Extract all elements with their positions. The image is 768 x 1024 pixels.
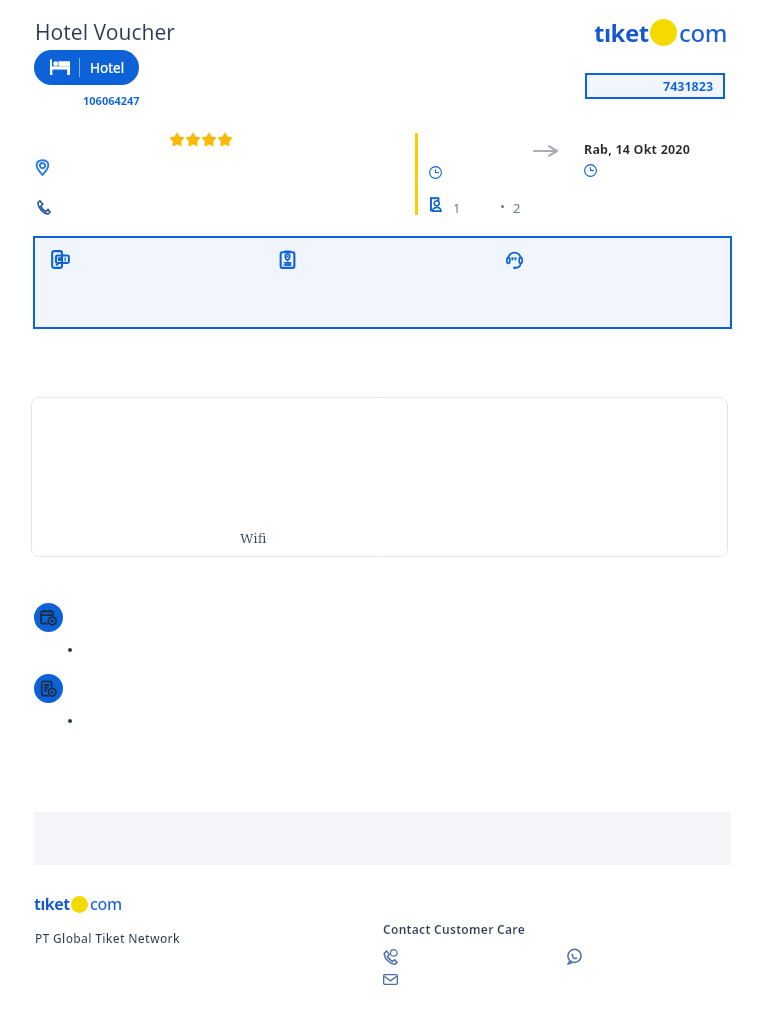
button[interactable]: Wifi (31, 397, 728, 557)
button[interactable]: Booking code 7431823 (585, 73, 725, 99)
button[interactable]: tiket.com home (594, 16, 728, 49)
staticText: 7431823 (663, 78, 714, 95)
staticText: Hotel Voucher (35, 18, 176, 47)
staticText: 2 (513, 199, 521, 217)
button[interactable]: Terms and conditions (34, 674, 63, 703)
staticText: PT Global Tiket Network (35, 930, 180, 946)
staticText: Contact Customer Care (383, 921, 525, 937)
staticText: Hotel (90, 59, 125, 77)
staticText: 1 (453, 199, 461, 217)
button[interactable]: Customer care 24 hours (493, 238, 720, 327)
staticText: Rab, 14 Okt 2020 (584, 141, 691, 158)
button[interactable]: tiket.com (34, 893, 122, 915)
staticText: com (90, 893, 122, 915)
button[interactable]: Hotel (34, 50, 139, 85)
button[interactable]: Cancellation policy (34, 603, 63, 632)
button[interactable]: Call customer care (383, 947, 400, 964)
staticText: 106064247 (83, 93, 140, 108)
button[interactable]: Check-in online (39, 238, 266, 327)
button[interactable]: WhatsApp customer care (567, 947, 584, 964)
staticText: com (679, 16, 728, 49)
staticText: Wifi (240, 529, 267, 547)
staticText: tıket (594, 16, 649, 49)
button[interactable]: Booking details (266, 238, 493, 327)
button[interactable]: Email customer care (383, 972, 400, 987)
staticText: tıket (34, 893, 70, 915)
